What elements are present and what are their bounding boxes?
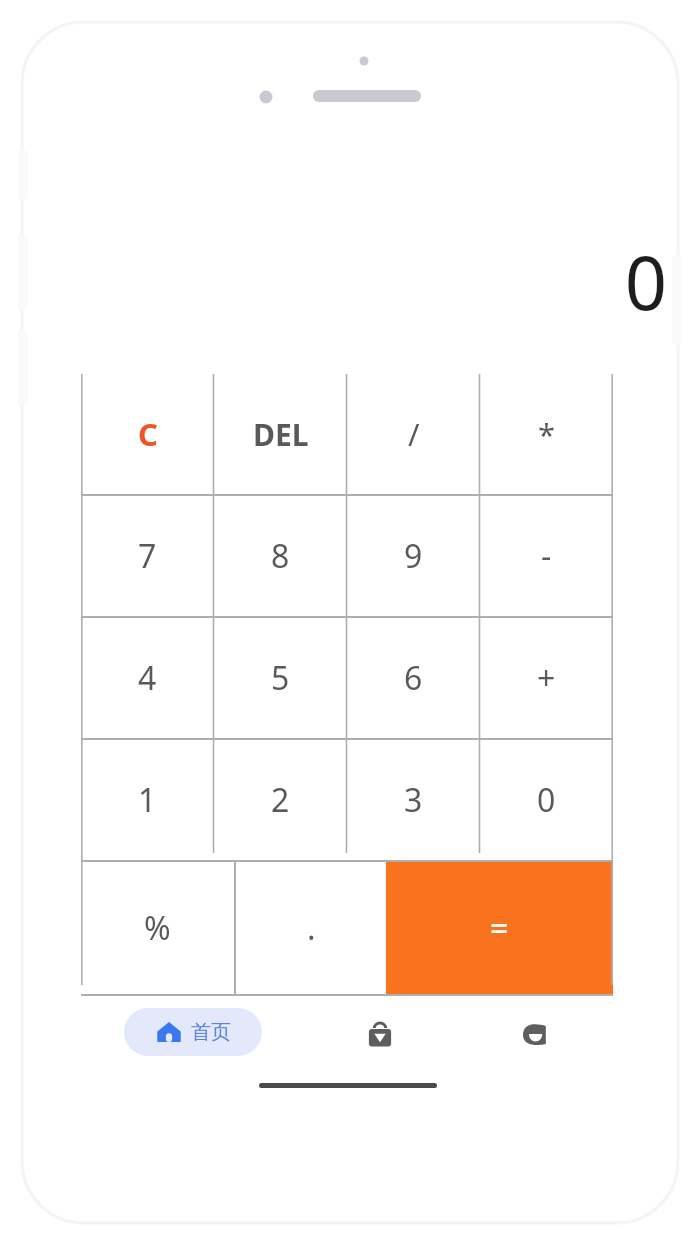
button[interactable]: /: [347, 374, 480, 494]
button[interactable]: *: [480, 374, 613, 494]
staticText: /: [408, 413, 420, 455]
staticText: 首页: [191, 1020, 231, 1045]
button[interactable]: Account: [510, 1010, 560, 1060]
staticText: %: [144, 906, 171, 950]
staticText: 0: [537, 778, 556, 822]
button[interactable]: 2: [214, 740, 347, 860]
button[interactable]: 0: [480, 740, 613, 860]
button[interactable]: 1: [81, 740, 214, 860]
button[interactable]: 5: [214, 618, 347, 738]
button[interactable]: 8: [214, 496, 347, 616]
button[interactable]: Shop: [355, 1010, 405, 1060]
button[interactable]: 9: [347, 496, 480, 616]
staticText: 9: [404, 534, 423, 578]
staticText: 3: [404, 778, 423, 822]
staticText: 4: [138, 656, 157, 700]
staticText: 0: [624, 231, 667, 332]
staticText: =: [490, 906, 509, 950]
button[interactable]: C: [81, 374, 214, 494]
button[interactable]: 6: [347, 618, 480, 738]
staticText: 2: [271, 778, 290, 822]
button[interactable]: 4: [81, 618, 214, 738]
staticText: -: [541, 534, 552, 578]
button[interactable]: 3: [347, 740, 480, 860]
button[interactable]: 首页: [124, 1008, 262, 1056]
staticText: DEL: [253, 414, 309, 455]
staticText: 6: [404, 656, 423, 700]
staticText: C: [138, 413, 158, 455]
staticText: *: [538, 413, 556, 455]
staticText: 8: [271, 534, 290, 578]
button[interactable]: %: [81, 862, 234, 994]
staticText: 5: [271, 656, 290, 700]
staticText: .: [307, 906, 316, 950]
button[interactable]: DEL: [214, 374, 347, 494]
staticText: 1: [138, 778, 157, 822]
button[interactable]: =: [386, 862, 613, 994]
button[interactable]: -: [480, 496, 613, 616]
staticText: 7: [138, 534, 157, 578]
button[interactable]: 7: [81, 496, 214, 616]
staticText: +: [537, 656, 556, 700]
button[interactable]: +: [480, 618, 613, 738]
button[interactable]: .: [236, 862, 386, 994]
